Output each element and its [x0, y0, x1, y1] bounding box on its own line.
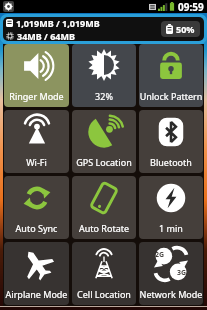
staticText: Network Mode	[139, 288, 203, 300]
button[interactable]: 32%	[72, 44, 136, 107]
staticText: 1 min	[139, 222, 203, 234]
button[interactable]: Settings	[3, 1, 14, 12]
button[interactable]: Auto Rotate	[72, 176, 136, 239]
staticText: Wi-Fi	[4, 156, 69, 168]
button[interactable]: Unlock Pattern	[139, 44, 203, 107]
staticText: 2G	[155, 250, 165, 260]
staticText: 50%	[176, 23, 195, 35]
button[interactable]: Wi-Fi	[4, 110, 69, 173]
button[interactable]: 1 min	[139, 176, 203, 239]
button[interactable]: Ringer Mode	[4, 44, 69, 107]
staticText: 34MB / 64MB	[17, 30, 75, 41]
staticText: Bluetooth	[139, 156, 203, 168]
staticText: GPS Location	[72, 156, 136, 168]
staticText: 32%	[72, 90, 136, 102]
button[interactable]: Cell Location	[72, 242, 136, 305]
staticText: Unlock Pattern	[139, 90, 203, 102]
staticText: 1,019MB / 1,019MB	[16, 17, 100, 29]
staticText: 3G	[177, 268, 187, 278]
staticText: Cell Location	[72, 288, 136, 300]
button[interactable]: Bluetooth	[139, 110, 203, 173]
button[interactable]: 50%	[161, 21, 200, 37]
button[interactable]: Auto Sync	[4, 176, 69, 239]
staticText: Airplane Mode	[4, 288, 69, 300]
staticText: Auto Rotate	[72, 222, 136, 234]
staticText: Auto Sync	[4, 222, 69, 234]
button[interactable]: Airplane Mode	[4, 242, 69, 305]
button[interactable]: 1,019MB / 1,019MB	[3, 17, 204, 41]
button[interactable]: GPS Location	[72, 110, 136, 173]
button[interactable]: 2G	[139, 242, 203, 305]
staticText: 09:59	[178, 0, 204, 13]
staticText: Ringer Mode	[4, 90, 69, 102]
